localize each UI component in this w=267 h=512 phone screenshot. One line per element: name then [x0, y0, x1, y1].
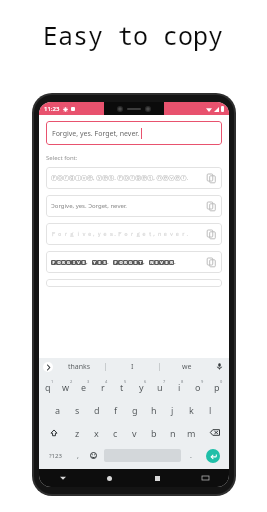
staticText: E	[82, 260, 85, 265]
button[interactable]: Forgive, yes. Forget, never.	[46, 121, 222, 145]
button[interactable]: s	[68, 398, 87, 421]
button[interactable]: t	[114, 375, 133, 398]
button[interactable]: Ｆｏｒｇｉｖｅ, ｙｅｓ. Ｆｏｒｇｅｔ, ｎｅｖｅｒ.	[46, 223, 222, 245]
staticText: Y	[93, 260, 96, 265]
button[interactable]: i	[171, 375, 190, 398]
staticText: 3	[87, 379, 90, 384]
button[interactable]: c	[106, 421, 125, 444]
button[interactable]: k	[182, 398, 201, 421]
staticText: m	[187, 427, 196, 439]
button[interactable]: More suggestions	[43, 362, 53, 372]
staticText: E	[98, 260, 101, 265]
staticText: E	[165, 260, 168, 265]
button[interactable]: I	[106, 358, 159, 375]
staticText: S	[103, 260, 106, 265]
staticText: y	[139, 381, 144, 393]
button[interactable]: e	[76, 375, 95, 398]
button[interactable]: Keyboard	[181, 469, 229, 487]
button[interactable]: .	[183, 446, 198, 465]
staticText: Easy to copy	[43, 18, 224, 52]
button[interactable]: l	[201, 398, 220, 421]
staticText: thanks	[68, 362, 91, 372]
staticText: N	[150, 260, 154, 265]
staticText: R	[124, 260, 127, 265]
staticText: c	[113, 427, 118, 439]
button[interactable]: x	[87, 421, 106, 444]
staticText: R	[170, 260, 173, 265]
button[interactable]: Copy	[205, 228, 217, 240]
button[interactable]: d	[87, 398, 106, 421]
staticText: V	[77, 260, 80, 265]
button[interactable]: ?123	[41, 446, 70, 465]
staticText: Forgive, yes. Forget, never.	[52, 129, 140, 139]
button[interactable]: ,	[70, 446, 85, 465]
button[interactable]: Copy	[205, 256, 217, 268]
button[interactable]: Backspace	[201, 421, 228, 444]
staticText: ,	[143, 258, 145, 266]
button[interactable]: u	[152, 375, 171, 398]
button[interactable]: v	[125, 421, 144, 444]
button[interactable]: Recents	[133, 469, 181, 487]
staticText: 1	[51, 379, 54, 384]
button[interactable]: Ⓕⓞⓡⓖⓘⓥⓔ, ⓨⓔⓢ. Ⓕⓞⓡⓖⓔⓣ, ⓝⓔⓥⓔⓡ.	[46, 167, 222, 189]
button[interactable]: z	[68, 421, 87, 444]
staticText: E	[134, 260, 137, 265]
button[interactable]: j	[163, 398, 182, 421]
button[interactable]: Shift	[40, 421, 68, 444]
button[interactable]: h	[144, 398, 163, 421]
button[interactable]: f	[106, 398, 125, 421]
staticText: .	[190, 451, 192, 461]
staticText: 8	[181, 379, 184, 384]
button[interactable]: p	[209, 375, 228, 398]
staticText: h	[151, 404, 157, 416]
staticText: j	[171, 404, 174, 416]
button[interactable]: Back	[39, 469, 86, 487]
button[interactable]: Emoji	[85, 446, 102, 465]
button[interactable]: F	[46, 251, 222, 273]
staticText: q	[45, 381, 51, 393]
staticText: R	[62, 260, 65, 265]
staticText: G	[67, 260, 70, 265]
staticText: ?123	[49, 452, 62, 460]
button[interactable]: r	[95, 375, 114, 398]
staticText: 9	[201, 379, 204, 384]
button[interactable]: Voice input	[213, 358, 225, 375]
staticText: w	[62, 381, 70, 393]
staticText: 6	[144, 379, 147, 384]
staticText: z	[75, 427, 80, 439]
staticText: x	[94, 427, 99, 439]
staticText: p	[214, 381, 220, 393]
staticText: G	[129, 260, 132, 265]
button[interactable]: b	[144, 421, 163, 444]
staticText: we	[182, 362, 192, 372]
button[interactable]: g	[125, 398, 144, 421]
button[interactable]: a	[48, 398, 68, 421]
staticText: F	[114, 260, 117, 265]
button[interactable]: n	[163, 421, 182, 444]
staticText: O	[119, 260, 123, 265]
button[interactable]: Ɔorgive, yes. Ɔorget, never.	[46, 195, 222, 217]
button[interactable]: q	[40, 375, 58, 398]
staticText: g	[132, 404, 138, 416]
button[interactable]: Enter	[200, 448, 225, 463]
button[interactable]: we	[160, 358, 213, 375]
button[interactable]: Copy	[205, 172, 217, 184]
staticText: ,	[77, 451, 79, 461]
staticText: 7	[163, 379, 166, 384]
staticText: n	[170, 427, 176, 439]
staticText: T	[139, 260, 142, 265]
staticText: a	[55, 404, 61, 416]
button[interactable]: m	[182, 421, 201, 444]
button[interactable]: thanks	[53, 358, 105, 375]
button[interactable]: Home	[86, 469, 133, 487]
staticText: k	[189, 404, 194, 416]
staticText: 11:23	[44, 105, 60, 113]
button[interactable]: w	[58, 375, 76, 398]
staticText: e	[81, 381, 87, 393]
button[interactable]: o	[190, 375, 209, 398]
staticText: 4	[105, 379, 108, 384]
button[interactable]: Copy	[205, 200, 217, 212]
button[interactable]: y	[133, 375, 152, 398]
